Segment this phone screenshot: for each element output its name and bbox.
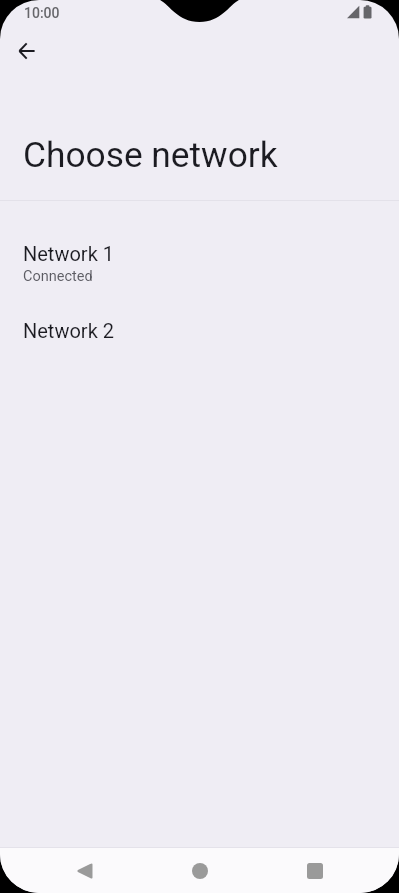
staticText: Network 2 bbox=[23, 319, 114, 342]
button[interactable]: Recent apps bbox=[291, 848, 339, 893]
button[interactable]: Navigate up bbox=[3, 27, 51, 75]
staticText: 10:00 bbox=[24, 5, 60, 21]
staticText: Choose network bbox=[23, 134, 278, 175]
staticText: Network 1 bbox=[23, 242, 114, 265]
button[interactable]: Network 2 bbox=[0, 313, 399, 371]
button[interactable]: Network 1 bbox=[0, 236, 399, 313]
button[interactable]: Home bbox=[176, 848, 224, 893]
button[interactable]: Back bbox=[61, 848, 109, 893]
staticText: Connected bbox=[23, 268, 93, 285]
